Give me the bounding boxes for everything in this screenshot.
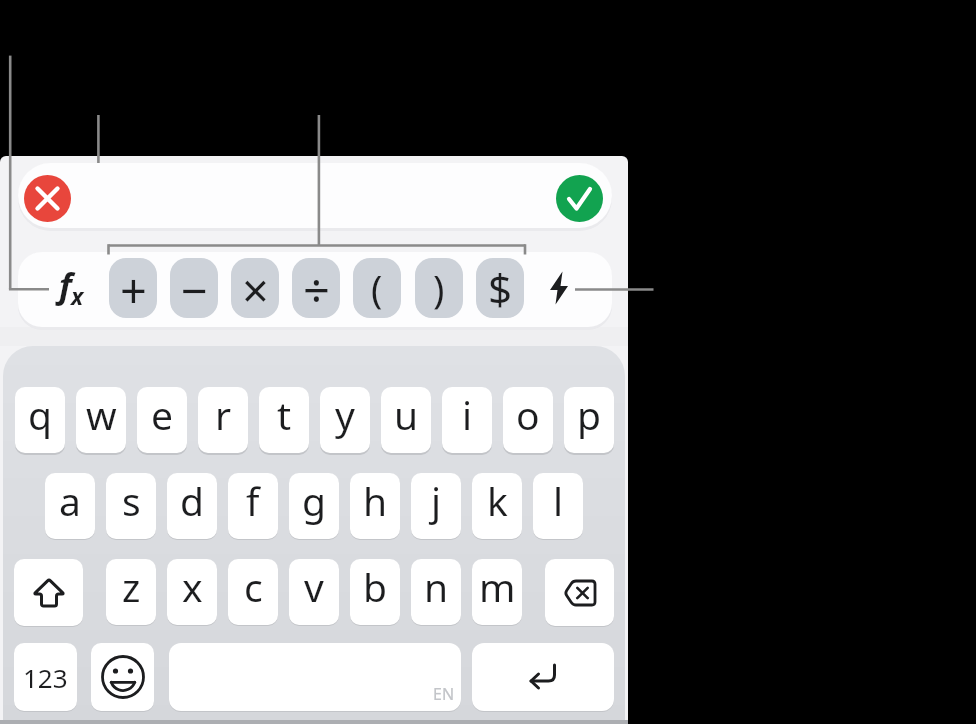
staticText: m (479, 560, 516, 613)
button[interactable]: t (259, 387, 309, 453)
button[interactable]: r (198, 387, 248, 453)
button[interactable]: v (289, 559, 339, 625)
button[interactable]: c (228, 559, 278, 625)
button[interactable]: f (228, 473, 278, 539)
button[interactable]: ÷ (292, 258, 340, 318)
staticText: c (244, 560, 263, 613)
button[interactable]: s (106, 473, 156, 539)
staticText: v (304, 560, 324, 613)
button[interactable]: p (564, 387, 614, 453)
button[interactable]: + (109, 258, 157, 318)
staticText: l (553, 474, 564, 527)
button[interactable]: y (320, 387, 370, 453)
button[interactable]: $ (476, 258, 524, 318)
button[interactable]: − (170, 258, 218, 318)
button[interactable]: g (289, 473, 339, 539)
button[interactable]: z (106, 559, 156, 625)
staticText: i (462, 388, 473, 441)
button[interactable] (545, 559, 614, 626)
button[interactable]: i (442, 387, 492, 453)
staticText: × (242, 258, 269, 318)
button[interactable]: d (167, 473, 217, 539)
staticText: ( (371, 262, 383, 314)
button[interactable] (545, 267, 573, 309)
staticText: n (424, 560, 449, 613)
staticText: u (394, 388, 419, 441)
button[interactable]: h (350, 473, 400, 539)
staticText: t (277, 388, 292, 441)
staticText: j (431, 474, 442, 527)
button[interactable]: q (15, 387, 65, 453)
staticText: + (120, 258, 147, 318)
staticText: f (246, 474, 260, 527)
staticText: w (86, 388, 117, 441)
staticText: x (182, 560, 203, 613)
button[interactable]: a (45, 473, 95, 539)
button[interactable]: o (503, 387, 553, 453)
staticText: k (487, 474, 508, 527)
staticText: y (335, 388, 355, 441)
button[interactable] (556, 175, 603, 222)
button[interactable]: ( (353, 258, 401, 318)
button[interactable]: w (76, 387, 126, 453)
button[interactable]: m (472, 559, 522, 625)
button[interactable]: l (533, 473, 583, 539)
staticText: − (181, 258, 208, 318)
staticText: r (215, 388, 232, 441)
button[interactable]: e (137, 387, 187, 453)
staticText: e (151, 388, 173, 441)
staticText: d (180, 474, 204, 527)
button[interactable]: ) (415, 258, 463, 318)
staticText: 123 (23, 660, 68, 695)
button[interactable]: b (350, 559, 400, 625)
staticText: o (516, 388, 540, 441)
staticText: $ (488, 260, 513, 317)
staticText: f (59, 262, 72, 308)
staticText: h (363, 474, 388, 527)
staticText: s (122, 474, 141, 527)
staticText: x (71, 280, 84, 311)
staticText: a (59, 474, 81, 527)
staticText: b (363, 560, 387, 613)
button[interactable]: n (411, 559, 461, 625)
button[interactable]: j (411, 473, 461, 539)
button[interactable] (46, 258, 90, 316)
staticText: z (122, 560, 141, 613)
staticText: EN (433, 683, 455, 705)
button[interactable] (91, 643, 154, 711)
staticText: ÷ (303, 258, 330, 318)
button[interactable]: u (381, 387, 431, 453)
button[interactable]: × (231, 258, 279, 318)
button[interactable]: x (167, 559, 217, 625)
button[interactable] (169, 643, 461, 711)
staticText: p (577, 388, 601, 441)
button[interactable] (24, 175, 71, 222)
staticText: q (28, 388, 52, 441)
button[interactable]: k (472, 473, 522, 539)
staticText: ) (433, 262, 445, 314)
button[interactable] (472, 643, 614, 711)
staticText: g (302, 474, 326, 527)
button[interactable] (14, 559, 83, 626)
button[interactable]: 123 (14, 643, 77, 711)
